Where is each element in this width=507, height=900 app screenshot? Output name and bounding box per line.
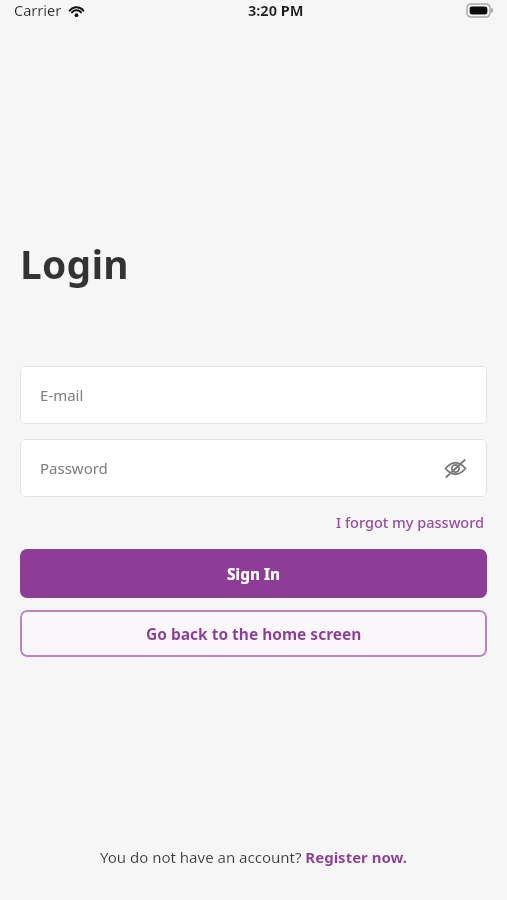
staticText: I forgot my password: [336, 512, 485, 532]
button[interactable]: Sign In: [20, 549, 487, 598]
button[interactable]: You do not have an account? Register now…: [96, 844, 411, 870]
button[interactable]: E-mail: [20, 366, 487, 424]
button[interactable]: Go back to the home screen: [20, 610, 487, 657]
staticText: Login: [20, 237, 129, 290]
staticText: Password: [40, 458, 108, 478]
button[interactable]: Password: [20, 439, 487, 497]
staticText: E-mail: [40, 385, 84, 405]
button[interactable]: Show password: [439, 452, 471, 484]
staticText: You do not have an account? Register now…: [100, 847, 407, 867]
staticText: Carrier: [14, 0, 62, 20]
staticText: 3:20 PM: [248, 0, 304, 20]
staticText: Go back to the home screen: [146, 623, 362, 644]
button[interactable]: I forgot my password: [334, 510, 487, 534]
staticText: Sign In: [227, 563, 281, 584]
